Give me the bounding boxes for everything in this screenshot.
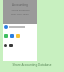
staticText: Accounting bbox=[12, 3, 28, 7]
staticText: Share database bbox=[11, 8, 30, 11]
staticText: with your team bbox=[11, 12, 29, 15]
staticText: Share Accounting Database bbox=[0, 63, 64, 67]
